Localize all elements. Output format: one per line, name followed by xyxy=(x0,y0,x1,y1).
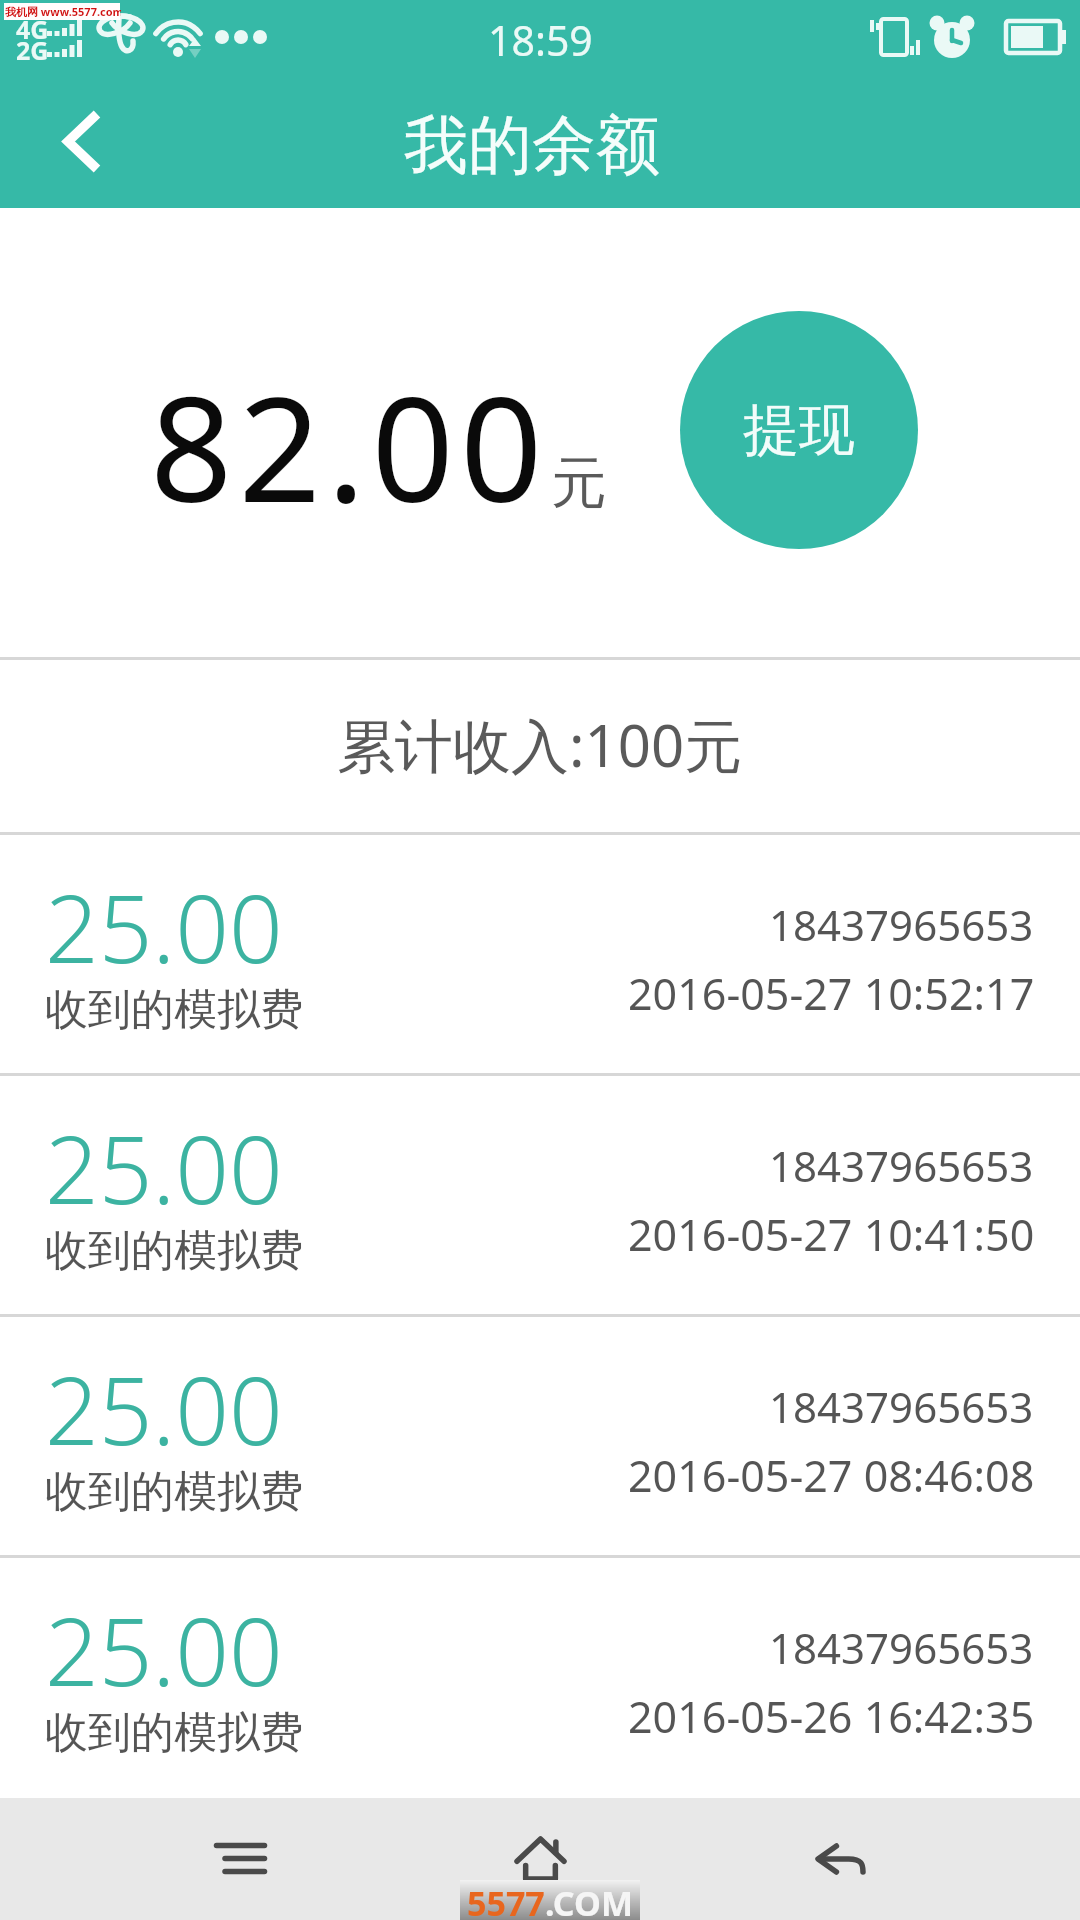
staticText: 18437965653 xyxy=(769,1378,1034,1435)
button[interactable]: Menu xyxy=(176,1798,306,1920)
staticText: 82.00 xyxy=(150,348,549,544)
button[interactable]: 提现 xyxy=(680,311,918,549)
button[interactable]: 25.00 xyxy=(0,1076,1080,1314)
staticText: 累计收入:100元 xyxy=(337,705,743,784)
button[interactable]: Home xyxy=(476,1798,606,1920)
button[interactable]: 25.00 xyxy=(0,1317,1080,1555)
staticText: 4G xyxy=(16,12,49,46)
staticText: 18:59 xyxy=(488,12,593,68)
staticText: 收到的模拟费 xyxy=(45,1224,303,1278)
staticText: 2016-05-26 16:42:35 xyxy=(628,1687,1035,1746)
staticText: 2016-05-27 10:52:17 xyxy=(628,964,1035,1023)
staticText: 2016-05-27 08:46:08 xyxy=(628,1446,1035,1505)
button[interactable]: Back xyxy=(0,88,160,208)
button[interactable]: Back xyxy=(777,1798,907,1920)
staticText: 我机网 www.5577.com xyxy=(5,4,121,19)
button[interactable]: 25.00 xyxy=(0,835,1080,1073)
staticText: 元 xyxy=(551,448,607,519)
staticText: 收到的模拟费 xyxy=(45,1706,303,1760)
staticText: 5577 xyxy=(467,1880,545,1920)
staticText: 我的余额 xyxy=(404,105,660,186)
staticText: 25.00 xyxy=(45,1345,283,1473)
staticText: 18437965653 xyxy=(769,896,1034,953)
staticText: 18437965653 xyxy=(769,1619,1034,1676)
button[interactable]: 25.00 xyxy=(0,1558,1080,1796)
staticText: 25.00 xyxy=(45,863,283,991)
staticText: 25.00 xyxy=(45,1104,283,1232)
staticText: 收到的模拟费 xyxy=(45,983,303,1037)
staticText: 2016-05-27 10:41:50 xyxy=(628,1205,1035,1264)
staticText: .COM xyxy=(545,1880,633,1920)
staticText: 提现 xyxy=(743,395,855,466)
staticText: 2G xyxy=(16,33,49,67)
staticText: 收到的模拟费 xyxy=(45,1465,303,1519)
staticText: 25.00 xyxy=(45,1586,283,1714)
staticText: 18437965653 xyxy=(769,1137,1034,1194)
